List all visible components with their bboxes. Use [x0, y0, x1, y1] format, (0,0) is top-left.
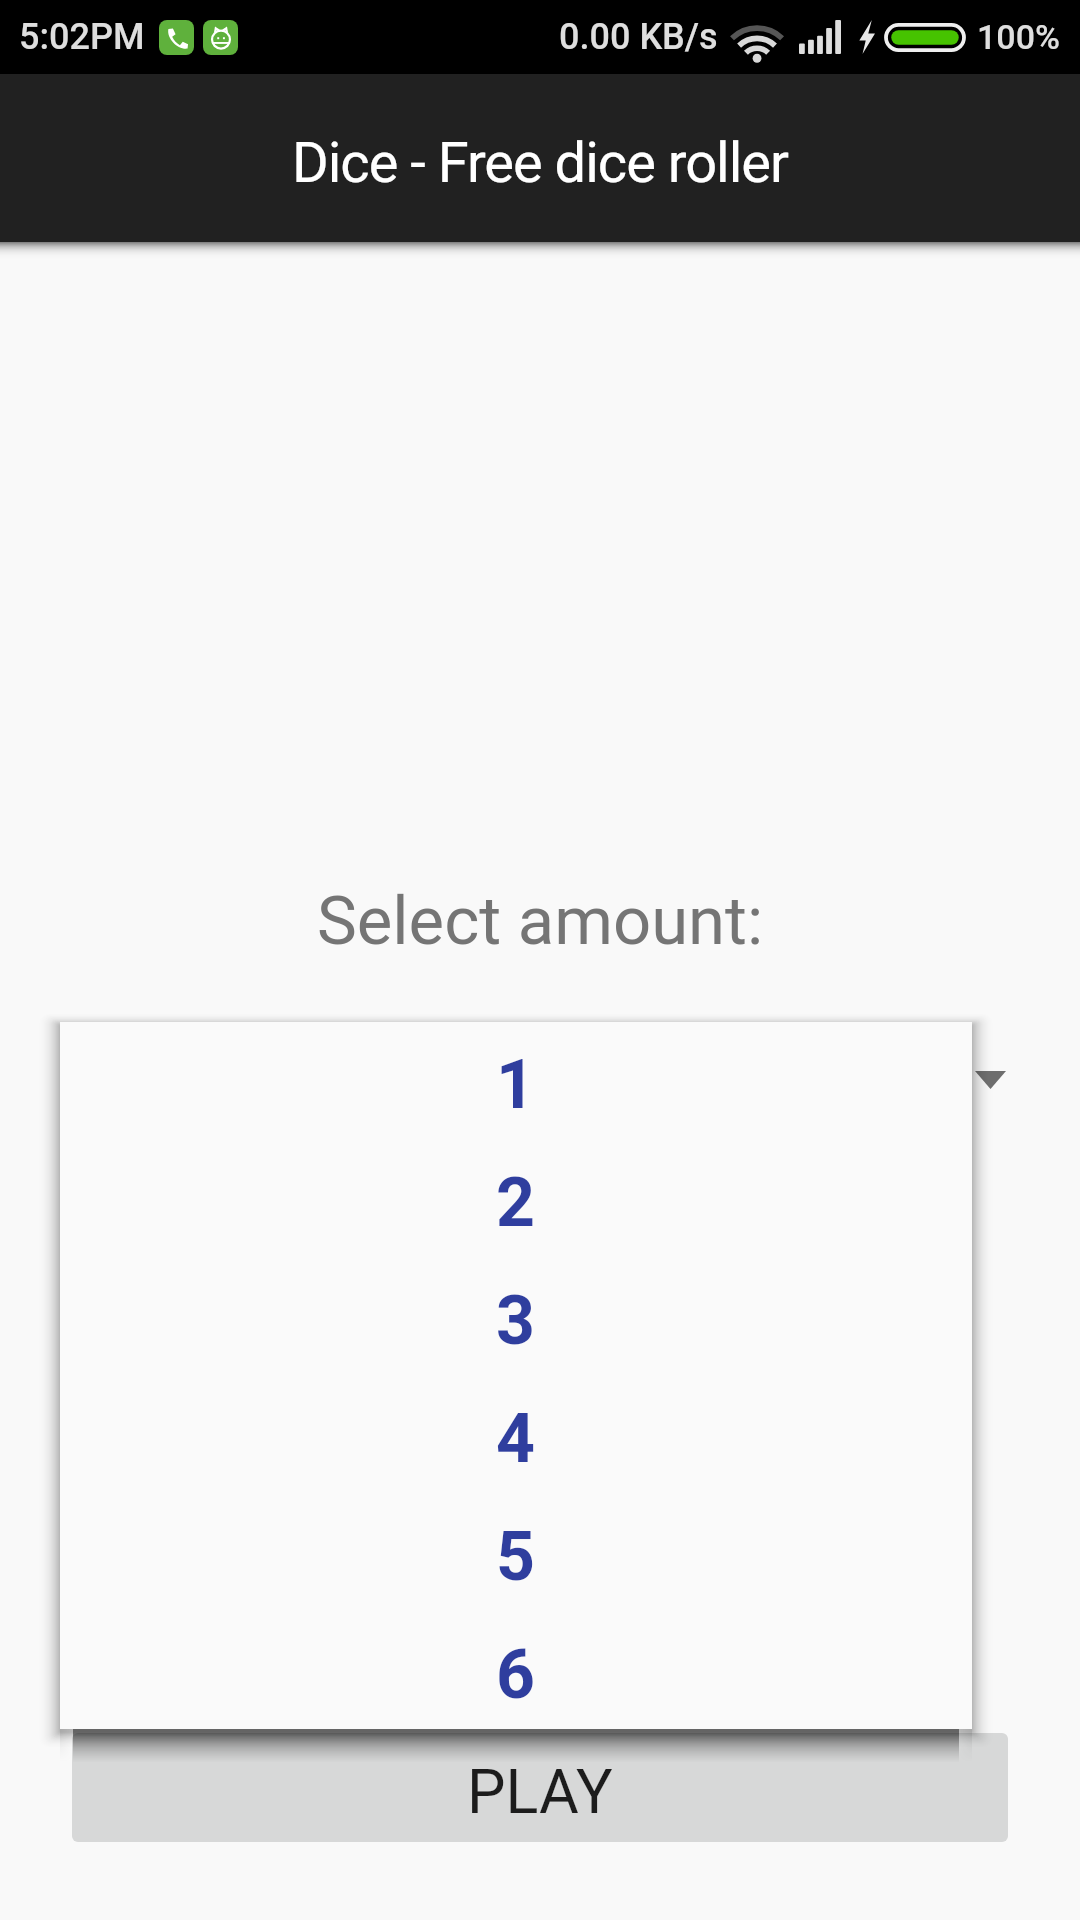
staticText: 0.00 KB/s — [559, 16, 718, 58]
staticText: 4 — [496, 1399, 536, 1479]
staticText: PLAY — [467, 1756, 613, 1827]
button[interactable]: 2 — [60, 1144, 972, 1262]
button[interactable]: 5 — [60, 1498, 972, 1616]
button[interactable]: Open dropdown — [960, 1050, 1020, 1110]
staticText: 5:02PM — [19, 16, 145, 58]
button[interactable]: 1 — [60, 1026, 972, 1144]
other: Phone — [159, 20, 194, 55]
staticText: 3 — [496, 1281, 536, 1361]
staticText: 5 — [496, 1517, 536, 1597]
staticText: 2 — [496, 1163, 536, 1243]
button[interactable]: 4 — [60, 1380, 972, 1498]
other: Notification — [203, 20, 238, 55]
staticText: Select amount: — [317, 882, 764, 961]
button[interactable]: PLAY — [72, 1733, 1008, 1842]
button[interactable]: 3 — [60, 1262, 972, 1380]
staticText: 100% — [977, 17, 1060, 57]
staticText: 1 — [496, 1045, 536, 1125]
staticText: Dice - Free dice roller — [292, 130, 788, 196]
staticText: 6 — [496, 1635, 536, 1715]
button[interactable]: 6 — [60, 1616, 972, 1733]
